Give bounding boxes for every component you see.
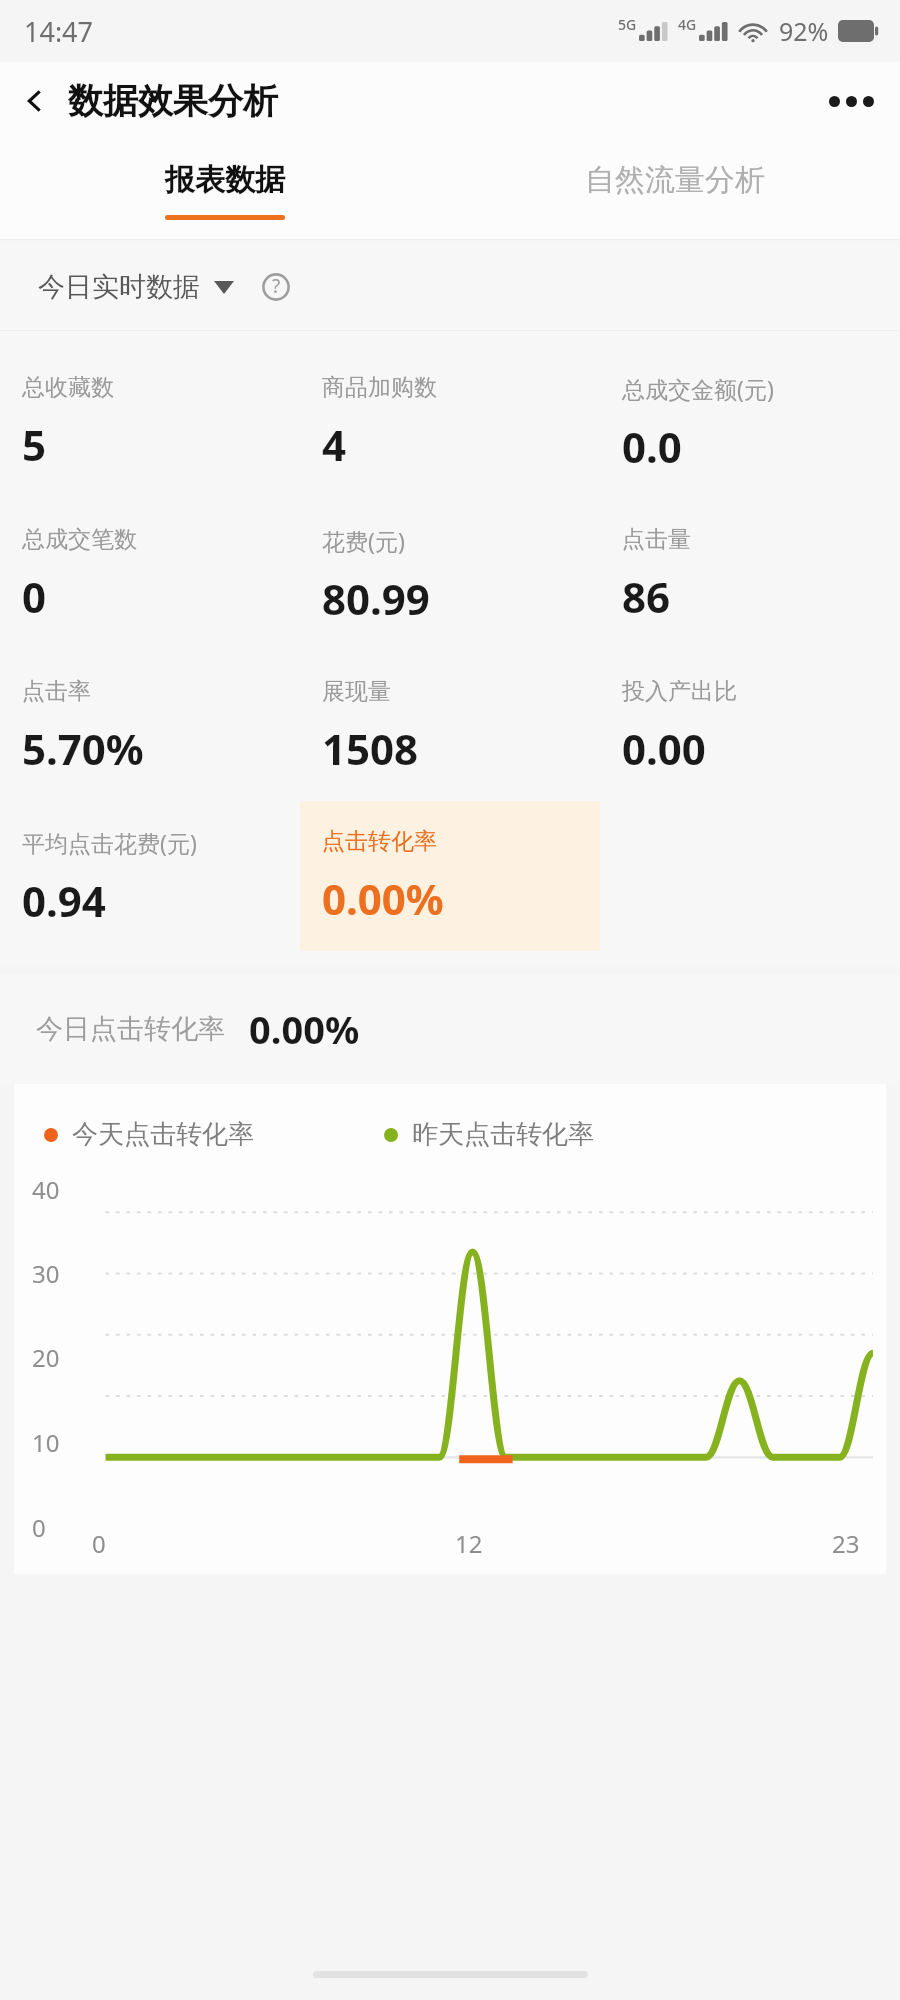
- staticText: 点击率: [22, 677, 91, 706]
- staticText: 14:47: [24, 13, 94, 50]
- button[interactable]: 今日实时数据: [36, 262, 236, 312]
- staticText: 4: [322, 416, 347, 473]
- staticText: 5: [22, 416, 47, 473]
- staticText: 平均点击花费(元): [22, 827, 197, 858]
- staticText: 数据效果分析: [68, 79, 278, 123]
- staticText: ?: [272, 273, 281, 299]
- staticText: 23: [832, 1527, 860, 1560]
- staticText: 1508: [322, 720, 419, 777]
- staticText: 0: [32, 1511, 46, 1544]
- staticText: 总成交金额(元): [622, 373, 774, 404]
- staticText: 0.00%: [249, 1003, 360, 1055]
- staticText: 展现量: [322, 677, 391, 706]
- staticText: 86: [622, 568, 671, 625]
- button[interactable]: 总成交金额(元): [600, 347, 900, 499]
- button[interactable]: 花费(元): [300, 499, 600, 651]
- button[interactable]: 报表数据: [0, 140, 450, 240]
- staticText: 12: [455, 1527, 483, 1560]
- staticText: 40: [32, 1173, 60, 1206]
- button[interactable]: 总收藏数: [0, 347, 300, 497]
- staticText: 总收藏数: [22, 373, 114, 402]
- staticText: 0: [92, 1527, 106, 1560]
- button[interactable]: 自然流量分析: [450, 140, 900, 240]
- staticText: 今日实时数据: [38, 270, 200, 304]
- button[interactable]: Back: [0, 71, 290, 131]
- button[interactable]: 总成交笔数: [0, 499, 300, 649]
- other: Back: [22, 88, 48, 114]
- staticText: 5.70%: [22, 720, 144, 777]
- staticText: 昨天点击转化率: [412, 1118, 594, 1151]
- button[interactable]: 商品加购数: [300, 347, 600, 497]
- staticText: 0.94: [22, 872, 106, 929]
- staticText: 80.99: [322, 570, 430, 627]
- staticText: 花费(元): [322, 525, 405, 556]
- staticText: 点击转化率: [322, 827, 437, 856]
- staticText: 点击量: [622, 525, 691, 554]
- staticText: 92%: [779, 14, 829, 48]
- staticText: 今日点击转化率: [36, 1012, 225, 1046]
- staticText: 0.00%: [322, 870, 444, 927]
- staticText: 30: [32, 1257, 60, 1290]
- button[interactable]: Help: [256, 267, 296, 307]
- staticText: 投入产出比: [622, 677, 737, 706]
- staticText: 总成交笔数: [22, 525, 137, 554]
- staticText: 报表数据: [165, 161, 285, 199]
- staticText: 0.00: [622, 720, 706, 777]
- button[interactable]: 展现量: [300, 651, 600, 801]
- staticText: 10: [32, 1426, 60, 1459]
- staticText: 4G: [678, 15, 697, 34]
- button[interactable]: 点击转化率: [300, 801, 600, 951]
- staticText: 今天点击转化率: [72, 1118, 254, 1151]
- staticText: 20: [32, 1341, 60, 1374]
- staticText: 5G: [618, 15, 637, 34]
- button[interactable]: 投入产出比: [600, 651, 900, 801]
- button[interactable]: More options: [803, 78, 900, 125]
- button[interactable]: 点击量: [600, 499, 900, 649]
- button[interactable]: 点击率: [0, 651, 300, 801]
- staticText: 0.0: [622, 418, 682, 475]
- button[interactable]: 平均点击花费(元): [0, 801, 300, 953]
- staticText: 自然流量分析: [585, 161, 765, 199]
- staticText: 商品加购数: [322, 373, 437, 402]
- staticText: 0: [22, 568, 47, 625]
